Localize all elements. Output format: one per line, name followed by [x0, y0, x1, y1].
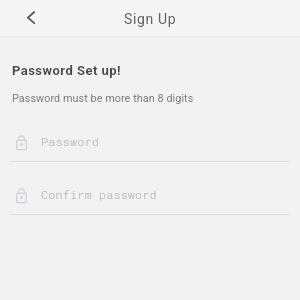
button[interactable]: Password [0, 132, 300, 162]
staticText: Sign Up [124, 11, 177, 27]
staticText: Password must be more than 8 digits [12, 92, 194, 105]
staticText: Password Set up! [12, 63, 121, 78]
staticText: Password [41, 134, 99, 150]
button[interactable]: Confirm password [0, 185, 300, 215]
button[interactable]: Back [18, 6, 42, 30]
staticText: Confirm password [41, 187, 157, 203]
